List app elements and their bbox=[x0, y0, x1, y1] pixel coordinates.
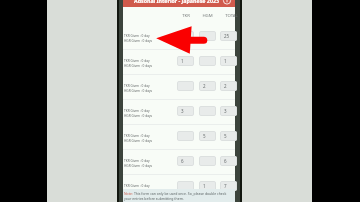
staticText: HGR Given : 0 days bbox=[124, 64, 153, 68]
button[interactable]: 1 bbox=[220, 56, 237, 66]
staticText: TKR Given : 0 day bbox=[124, 134, 150, 138]
staticText: HGM bbox=[202, 12, 213, 18]
button[interactable]: TKR Given : 0 day bbox=[123, 150, 235, 175]
staticText: TKR bbox=[182, 12, 190, 18]
button[interactable]: 7 bbox=[220, 181, 237, 191]
button[interactable]: Adsonal Interior - Japanese 2023 bbox=[123, 0, 235, 7]
button[interactable]: TKR Given : 0 day bbox=[123, 50, 235, 75]
staticText: 3 bbox=[224, 108, 227, 114]
button[interactable]: 6 bbox=[220, 156, 237, 166]
staticText: HGR Given : 0 days bbox=[124, 139, 153, 143]
button[interactable]: 2 bbox=[220, 81, 237, 91]
staticText: HGR Given : 0 days bbox=[124, 164, 153, 168]
staticText: 6 bbox=[181, 158, 184, 164]
staticText: 25 bbox=[224, 33, 230, 39]
button[interactable] bbox=[177, 31, 194, 41]
button[interactable]: TKR Given : 0 day bbox=[123, 175, 235, 200]
button[interactable]: Information bbox=[223, 0, 231, 4]
staticText: TOTAL bbox=[225, 12, 238, 18]
button[interactable] bbox=[199, 56, 216, 66]
button[interactable] bbox=[177, 81, 194, 91]
staticText: Adsonal Interior - Japanese 2023 bbox=[134, 0, 219, 4]
staticText: 2 bbox=[203, 83, 206, 89]
button[interactable] bbox=[199, 156, 216, 166]
staticText: 1 bbox=[181, 58, 184, 64]
staticText: This form can only be used once. So, ple… bbox=[133, 191, 227, 196]
button[interactable]: 5 bbox=[199, 131, 216, 141]
button[interactable]: 1 bbox=[177, 56, 194, 66]
staticText: TKR Given : 0 day bbox=[124, 184, 150, 188]
button[interactable]: TKR Given : 0 day bbox=[123, 25, 235, 50]
button[interactable]: 2 bbox=[199, 81, 216, 91]
staticText: HGR Given : 0 days bbox=[124, 39, 153, 43]
staticText: 5 bbox=[203, 133, 206, 139]
staticText: TKR Given : 0 day bbox=[124, 84, 150, 88]
button[interactable]: TKR Given : 0 day bbox=[123, 125, 235, 150]
staticText: 5 bbox=[224, 133, 227, 139]
button[interactable] bbox=[177, 181, 194, 191]
staticText: 1 bbox=[203, 183, 206, 189]
staticText: Note: bbox=[124, 191, 133, 196]
button[interactable] bbox=[199, 106, 216, 116]
button[interactable]: 5 bbox=[220, 131, 237, 141]
button[interactable] bbox=[199, 31, 216, 41]
button[interactable]: 1 bbox=[199, 181, 216, 191]
staticText: HGR Given : 0 days bbox=[124, 189, 153, 193]
staticText: TKR Given : 0 day bbox=[124, 109, 150, 113]
button[interactable]: 6 bbox=[177, 156, 194, 166]
staticText: HGR Given : 0 days bbox=[124, 89, 153, 93]
button[interactable]: 3 bbox=[220, 106, 237, 116]
staticText: TKR Given : 0 day bbox=[124, 34, 150, 38]
staticText: 1 bbox=[224, 58, 227, 64]
button[interactable]: 25 bbox=[220, 31, 237, 41]
button[interactable]: 3 bbox=[177, 106, 194, 116]
staticText: 2 bbox=[224, 83, 227, 89]
staticText: HGR Given : 0 days bbox=[124, 114, 153, 118]
staticText: TKR Given : 0 day bbox=[124, 159, 150, 163]
staticText: 3 bbox=[181, 108, 184, 114]
staticText: 7 bbox=[224, 183, 227, 189]
button[interactable]: TKR Given : 0 day bbox=[123, 100, 235, 125]
button[interactable]: TKR Given : 0 day bbox=[123, 75, 235, 100]
button[interactable] bbox=[177, 131, 194, 141]
staticText: your entries before submitting them. bbox=[124, 196, 184, 201]
staticText: TKR Given : 0 day bbox=[124, 59, 150, 63]
staticText: 6 bbox=[224, 158, 227, 164]
